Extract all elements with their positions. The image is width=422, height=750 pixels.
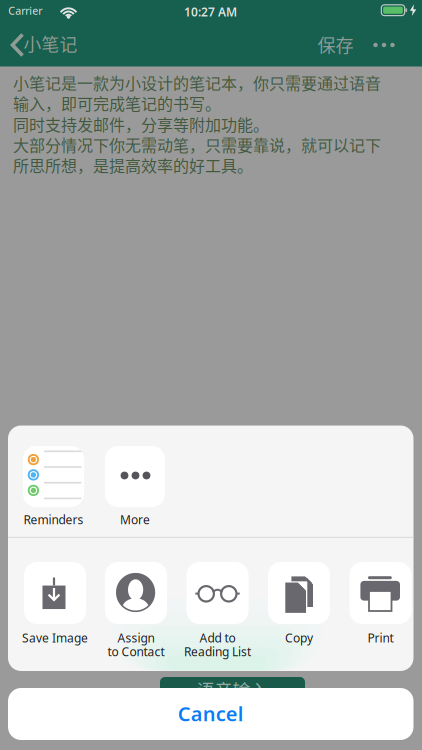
- button[interactable]: Add to: [177, 562, 257, 658]
- staticText: 所思所想，是提高效率的好工具。: [13, 153, 253, 177]
- button[interactable]: Reminders: [13, 446, 93, 530]
- staticText: Copy: [285, 630, 313, 646]
- button[interactable]: Copy: [259, 562, 339, 658]
- staticText: 10:27 AM: [184, 4, 237, 20]
- button[interactable]: More options: [362, 22, 406, 66]
- staticText: Reminders: [23, 511, 83, 527]
- button[interactable]: 小笔记: [6, 22, 100, 66]
- staticText: 同时支持发邮件，分享等附加功能。: [13, 112, 269, 136]
- staticText: Save Image: [22, 630, 88, 646]
- button[interactable]: Print: [340, 562, 420, 658]
- staticText: Cancel: [178, 700, 244, 727]
- staticText: Print: [367, 630, 393, 646]
- staticText: 小笔记是一款为小设计的笔记本，你只需要通过语音: [13, 71, 381, 94]
- staticText: 小笔记: [23, 31, 77, 57]
- staticText: More: [120, 511, 150, 527]
- staticText: 输入，即可完成笔记的书写。: [13, 91, 221, 115]
- button[interactable]: Save Image: [15, 562, 95, 658]
- button[interactable]: More: [95, 446, 175, 530]
- button[interactable]: 语音输入: [160, 677, 305, 711]
- staticText: 语音输入: [196, 677, 268, 703]
- button[interactable]: Assign: [96, 562, 176, 658]
- staticText: 大部分情况下你无需动笔，只需要靠说，就可以记下: [13, 133, 381, 156]
- staticText: to Contact: [107, 643, 164, 659]
- staticText: Assign: [117, 630, 154, 646]
- staticText: Add to: [199, 630, 235, 646]
- staticText: Reading List: [184, 643, 251, 659]
- button[interactable]: 保存: [305, 22, 365, 66]
- staticText: 保存: [317, 31, 353, 57]
- button[interactable]: Cancel: [8, 688, 413, 740]
- staticText: Carrier: [8, 4, 42, 18]
